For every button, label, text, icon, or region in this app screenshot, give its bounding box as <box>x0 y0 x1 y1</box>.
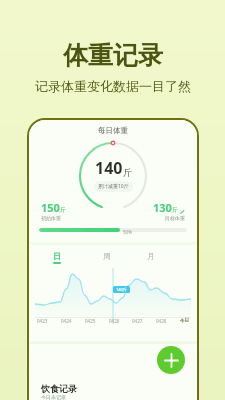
staticText: 今日未记录 <box>41 394 66 400</box>
staticText: 斤 <box>123 167 132 178</box>
staticText: 0427 <box>132 318 143 324</box>
button[interactable]: Edit target weight <box>153 200 185 215</box>
staticText: 目标体重 <box>165 215 185 221</box>
staticText: 累计减重10斤 <box>98 183 129 190</box>
staticText: 斤 <box>60 206 66 214</box>
staticText: 0423 <box>37 318 48 324</box>
staticText: 50% <box>123 229 132 235</box>
staticText: 记录体重变化数据一目了然 <box>35 78 191 94</box>
staticText: 周 <box>103 251 111 261</box>
staticText: 0425 <box>85 318 96 324</box>
staticText: 0424 <box>61 318 72 324</box>
button[interactable]: 饮食记录 <box>41 383 77 400</box>
staticText: 0426 <box>109 318 120 324</box>
staticText: 饮食记录 <box>41 383 77 394</box>
staticText: 今日 <box>180 318 189 324</box>
staticText: 日 <box>53 251 61 261</box>
button[interactable]: 月 <box>145 251 157 264</box>
staticText: 斤 <box>172 206 178 214</box>
staticText: 140斤 <box>116 287 127 292</box>
button[interactable]: Add record <box>157 346 185 374</box>
staticText: 月 <box>147 251 155 261</box>
staticText: 每日体重 <box>98 126 128 135</box>
button[interactable]: 日 <box>51 251 63 264</box>
staticText: 初始体重 <box>41 215 61 221</box>
staticText: 150 <box>41 200 60 215</box>
staticText: 体重记录 <box>63 40 163 71</box>
button[interactable]: 周 <box>101 251 113 264</box>
staticText: 130 <box>153 200 172 215</box>
staticText: 0428 <box>156 318 167 324</box>
staticText: 140 <box>95 157 123 179</box>
